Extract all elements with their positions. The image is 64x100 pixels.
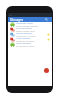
button[interactable]: Nina Kowalski bbox=[8, 37, 52, 42]
staticText: Messages bbox=[10, 18, 23, 22]
button[interactable]: Oliver Bennett bbox=[8, 42, 52, 47]
staticText: Invoice 2481 is ready bbox=[16, 35, 36, 37]
button[interactable]: Compose bbox=[44, 68, 49, 73]
staticText: Alexander Stone bbox=[16, 22, 33, 25]
button[interactable]: Priya Raghavan bbox=[8, 27, 52, 32]
staticText: Re: quarterly report bbox=[16, 45, 35, 47]
button[interactable]: Marcus Delaney bbox=[8, 32, 52, 37]
staticText: Marcus Delaney bbox=[16, 32, 33, 35]
staticText: Design review notes bbox=[16, 30, 35, 32]
staticText: Project update meeting bbox=[16, 25, 39, 27]
staticText: Priya Raghavan bbox=[16, 27, 32, 30]
button[interactable]: Alexander Stone bbox=[8, 22, 52, 27]
staticText: Weekend trip plans bbox=[16, 40, 35, 42]
staticText: Nina Kowalski bbox=[16, 37, 31, 40]
staticText: Oliver Bennett bbox=[16, 42, 31, 45]
staticText: • • • bbox=[9, 14, 13, 17]
button[interactable]: Messages bbox=[8, 17, 52, 22]
button[interactable]: Search bbox=[45, 18, 48, 21]
